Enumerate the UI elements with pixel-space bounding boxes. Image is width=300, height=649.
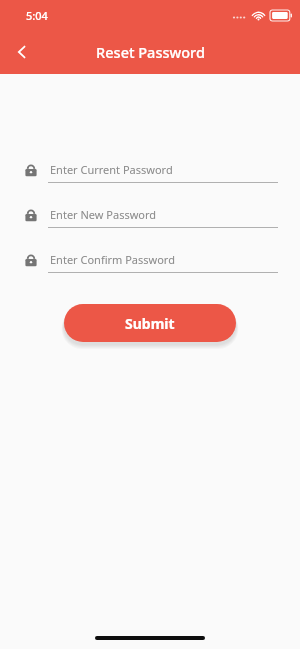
staticText: Reset Password (96, 42, 205, 62)
button[interactable]: Enter Confirm Password (0, 245, 300, 273)
staticText: Enter Current Password (50, 162, 173, 177)
staticText: Enter New Password (50, 207, 157, 222)
button[interactable]: Enter New Password (0, 200, 300, 228)
staticText: 5:04 (26, 8, 48, 23)
staticText: Submit (125, 314, 175, 333)
button[interactable]: Back (0, 30, 44, 74)
button[interactable]: Submit (64, 304, 236, 342)
button[interactable]: Enter Current Password (0, 155, 300, 183)
staticText: Enter Confirm Password (50, 252, 175, 267)
